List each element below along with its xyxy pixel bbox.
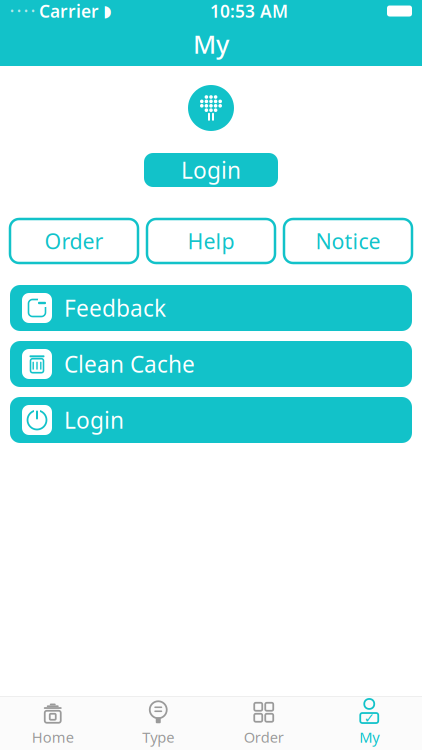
button[interactable]: Order xyxy=(10,219,138,263)
staticText: 10:53 AM xyxy=(210,0,288,22)
staticText: Order xyxy=(44,227,103,255)
button[interactable]: Feedback xyxy=(10,285,412,331)
staticText: ✓ xyxy=(364,710,375,725)
staticText: Feedback xyxy=(64,293,166,323)
button[interactable]: Login xyxy=(144,153,278,187)
staticText: Help xyxy=(187,227,234,255)
staticText: Clean Cache xyxy=(64,349,195,379)
button[interactable]: Home xyxy=(0,697,105,749)
staticText: My xyxy=(193,27,229,61)
button[interactable]: ✓ xyxy=(316,697,422,749)
button[interactable]: Login xyxy=(10,397,412,443)
button[interactable]: Type xyxy=(105,697,211,749)
staticText: ◗ xyxy=(103,2,111,20)
staticText: Home xyxy=(32,727,74,747)
staticText: Order xyxy=(244,727,284,747)
staticText: Login xyxy=(181,155,241,185)
staticText: Type xyxy=(142,727,174,747)
staticText: My xyxy=(359,727,379,747)
staticText: Notice xyxy=(315,227,380,255)
button[interactable]: Notice xyxy=(284,219,412,263)
button[interactable]: Help xyxy=(147,219,275,263)
staticText: Carrier xyxy=(39,0,99,22)
staticText: • • • • xyxy=(10,4,35,18)
button[interactable]: Clean Cache xyxy=(10,341,412,387)
button[interactable]: Order xyxy=(211,697,316,749)
staticText: Login xyxy=(64,405,124,435)
